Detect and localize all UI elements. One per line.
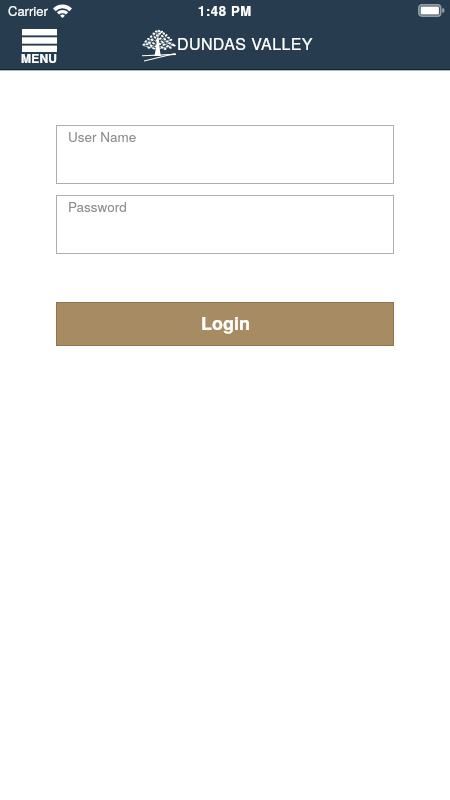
button[interactable]: Password (56, 195, 394, 254)
button[interactable]: Open navigation menu (17, 25, 58, 66)
button[interactable]: User Name (56, 125, 394, 184)
button[interactable]: Login (56, 302, 394, 346)
staticText: Login (201, 310, 250, 336)
staticText: Carrier (8, 1, 48, 20)
staticText: Password (68, 197, 127, 216)
staticText: 1:48 PM (198, 1, 252, 20)
staticText: DUNDAS VALLEY (177, 32, 313, 55)
staticText: MENU (21, 49, 58, 63)
staticText: User Name (68, 127, 137, 146)
